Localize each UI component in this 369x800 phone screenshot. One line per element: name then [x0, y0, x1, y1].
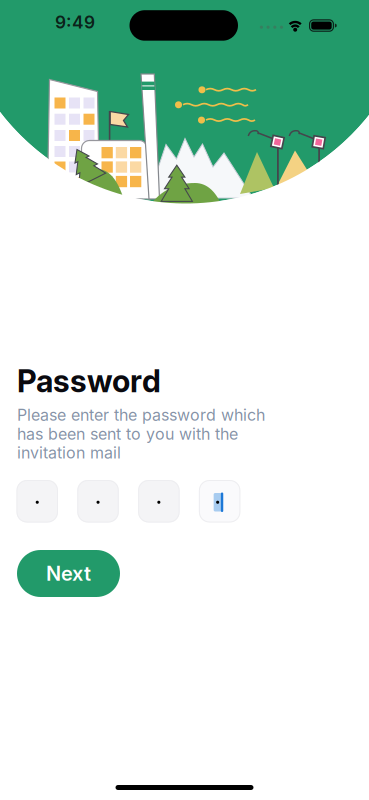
staticText: Password: [17, 363, 161, 399]
button[interactable]: Next: [17, 550, 120, 597]
staticText: Next: [46, 562, 91, 585]
staticText: invitation mail: [17, 443, 121, 462]
staticText: Please enter the password which: [17, 405, 265, 424]
button[interactable]: Password digit: [138, 480, 180, 522]
button[interactable]: Password digit: [16, 480, 58, 522]
button[interactable]: Password digit: [77, 480, 119, 522]
button[interactable]: Password digit: [199, 480, 240, 522]
staticText: 9:49: [55, 12, 95, 32]
staticText: has been sent to you with the: [17, 424, 238, 443]
button[interactable]: Home: [115, 785, 253, 790]
